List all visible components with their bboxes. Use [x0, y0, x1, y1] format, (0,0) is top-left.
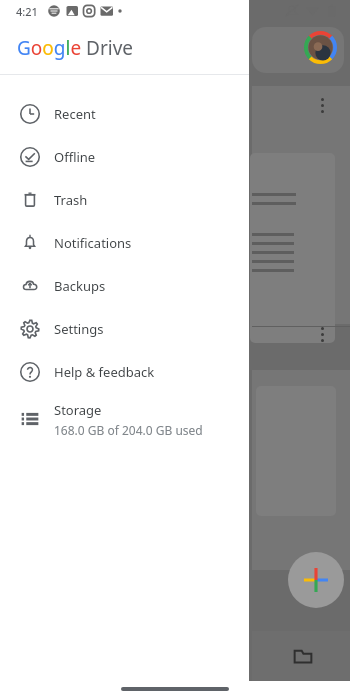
staticText: Backups — [54, 277, 106, 295]
button[interactable]: Trash — [0, 178, 249, 221]
staticText: Notifications — [54, 234, 132, 252]
staticText: 4:21 — [16, 4, 38, 19]
button[interactable]: Account — [304, 31, 337, 64]
staticText: Storage — [54, 401, 102, 419]
button[interactable]: More options — [321, 327, 324, 342]
staticText: Settings — [54, 320, 104, 338]
staticText: Google Drive — [17, 35, 134, 61]
staticText: 168.0 GB of 204.0 GB used — [54, 422, 203, 438]
button[interactable]: Files — [292, 645, 314, 667]
staticText: Help & feedback — [54, 363, 155, 381]
button[interactable]: Settings — [0, 307, 249, 350]
staticText: Trash — [54, 191, 88, 209]
button[interactable]: Help & feedback — [0, 350, 249, 393]
button[interactable]: Create new — [288, 552, 344, 608]
button[interactable] — [252, 27, 344, 73]
staticText: Offline — [54, 148, 96, 166]
button[interactable]: Storage — [0, 393, 249, 445]
button[interactable]: Backups — [0, 264, 249, 307]
button[interactable]: Notifications — [0, 221, 249, 264]
button[interactable]: More options — [321, 98, 324, 113]
button[interactable]: Recent — [0, 92, 249, 135]
button[interactable]: Offline — [0, 135, 249, 178]
staticText: Recent — [54, 105, 96, 123]
